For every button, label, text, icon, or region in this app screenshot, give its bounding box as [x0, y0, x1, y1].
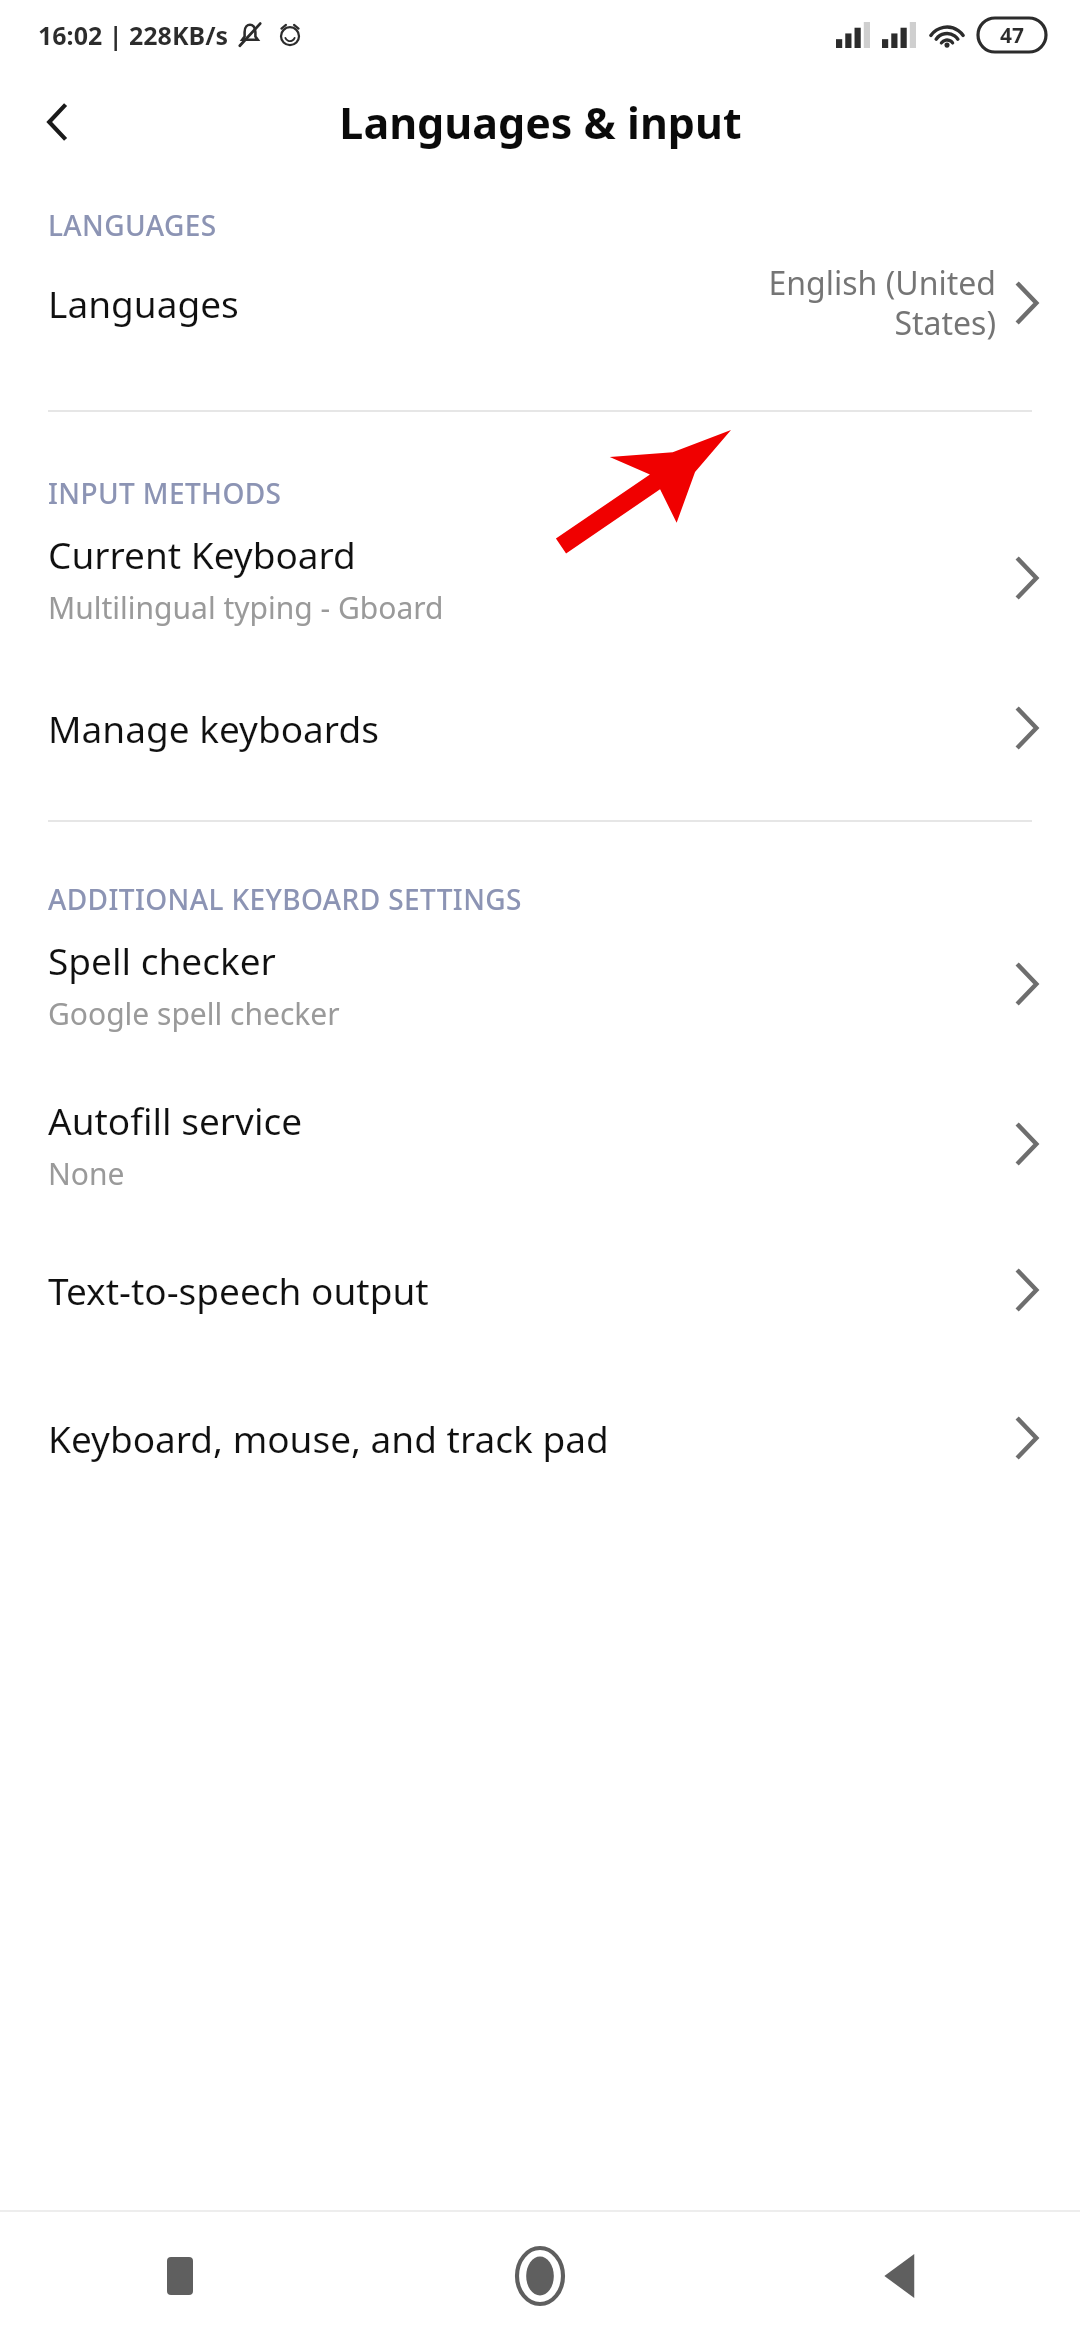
button[interactable]: Text-to-speech output: [0, 1238, 1080, 1342]
staticText: Google spell checker: [48, 993, 340, 1034]
staticText: Languages: [48, 278, 239, 328]
staticText: Multilingual typing - Gboard: [48, 587, 444, 628]
button[interactable]: Manage keyboards: [0, 682, 1080, 774]
staticText: English (United States): [746, 261, 996, 345]
staticText: 16:02 | 228KB/s: [38, 18, 229, 52]
button[interactable]: Recent apps: [132, 2228, 228, 2324]
staticText: Manage keyboards: [48, 703, 379, 753]
button[interactable]: Back: [852, 2228, 948, 2324]
button[interactable]: Current Keyboard: [0, 512, 1080, 644]
staticText: ADDITIONAL KEYBOARD SETTINGS: [48, 880, 1080, 918]
staticText: Spell checker: [48, 935, 276, 985]
staticText: Current Keyboard: [48, 529, 356, 579]
button[interactable]: Spell checker: [0, 918, 1080, 1050]
staticText: Text-to-speech output: [48, 1265, 429, 1315]
staticText: LANGUAGES: [48, 206, 1080, 244]
button[interactable]: Back: [20, 84, 96, 160]
staticText: INPUT METHODS: [48, 474, 1080, 512]
button[interactable]: Keyboard, mouse, and track pad: [0, 1386, 1080, 1490]
staticText: Autofill service: [48, 1095, 303, 1145]
staticText: Languages & input: [339, 93, 742, 152]
staticText: None: [48, 1153, 125, 1194]
staticText: 47: [1000, 21, 1025, 50]
staticText: Keyboard, mouse, and track pad: [48, 1413, 609, 1463]
button[interactable]: Languages: [0, 244, 1080, 362]
button[interactable]: Home: [492, 2228, 588, 2324]
button[interactable]: Autofill service: [0, 1078, 1080, 1210]
